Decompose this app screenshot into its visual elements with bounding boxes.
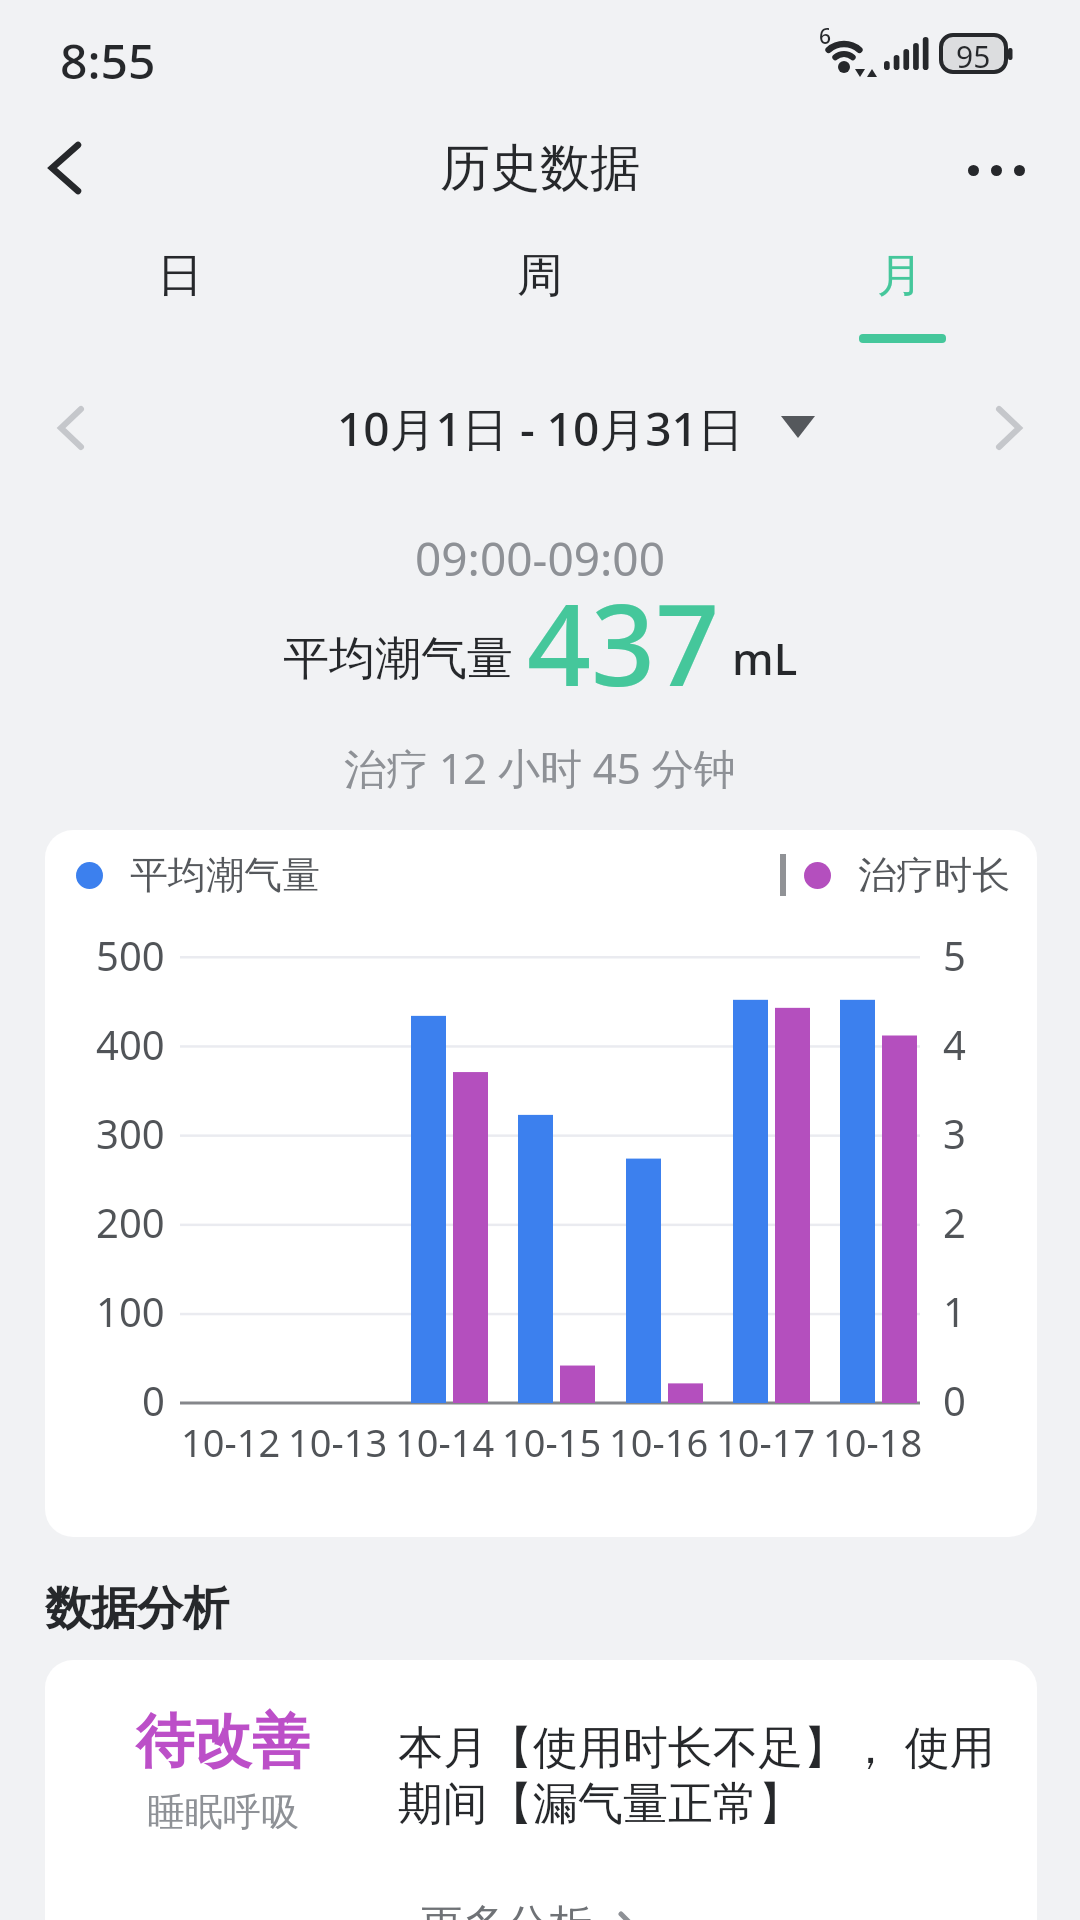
staticText: 周: [517, 247, 563, 305]
button[interactable]: 周: [360, 232, 720, 320]
staticText: 8:55: [60, 28, 156, 93]
staticText: mL: [732, 628, 798, 688]
button[interactable]: [30, 132, 100, 204]
staticText: 10-14: [395, 1416, 495, 1468]
staticText: 本月【使用时长不足】， 使用 期间【漏气量正常】: [398, 1715, 995, 1832]
button[interactable]: 10月1日 - 10月31日: [0, 392, 1080, 464]
staticText: 0: [943, 1373, 966, 1427]
button[interactable]: 日: [0, 232, 360, 320]
staticText: 200: [96, 1195, 165, 1249]
staticText: 治疗时长: [858, 851, 1010, 899]
button[interactable]: [968, 140, 1048, 200]
staticText: 10-16: [609, 1416, 709, 1468]
staticText: 平均潮气量: [130, 851, 320, 899]
button[interactable]: [974, 392, 1044, 464]
staticText: 95: [956, 36, 991, 77]
staticText: 3: [943, 1106, 966, 1160]
staticText: 2: [943, 1195, 966, 1249]
staticText: 10-17: [716, 1416, 816, 1468]
staticText: 月: [877, 247, 923, 305]
button[interactable]: [36, 392, 106, 464]
staticText: 0: [142, 1373, 165, 1427]
staticText: 100: [96, 1284, 165, 1338]
staticText: 400: [96, 1017, 165, 1071]
staticText: 睡眠呼吸: [147, 1788, 299, 1836]
staticText: 300: [96, 1106, 165, 1160]
staticText: 09:00-09:00: [415, 527, 665, 587]
staticText: 10-15: [502, 1416, 602, 1468]
staticText: 10月1日 - 10月31日: [337, 397, 744, 460]
button[interactable]: 更多分析: [420, 1896, 720, 1920]
staticText: 数据分析: [45, 1580, 229, 1638]
staticText: 平均潮气量: [283, 630, 513, 688]
staticText: 437: [527, 566, 720, 696]
staticText: 500: [96, 928, 165, 982]
staticText: 日: [157, 247, 203, 305]
staticText: 治疗 12 小时 45 分钟: [344, 739, 736, 796]
staticText: 1: [943, 1284, 966, 1338]
button[interactable]: 月: [720, 232, 1080, 320]
staticText: 10-12: [181, 1416, 281, 1468]
staticText: 6: [819, 22, 832, 51]
staticText: 待改善: [136, 1705, 310, 1778]
staticText: 10-18: [823, 1416, 923, 1468]
staticText: 更多分析: [420, 1899, 592, 1920]
staticText: 5: [943, 928, 966, 982]
staticText: 10-13: [288, 1416, 388, 1468]
staticText: 历史数据: [440, 137, 640, 200]
staticText: 4: [943, 1017, 966, 1071]
